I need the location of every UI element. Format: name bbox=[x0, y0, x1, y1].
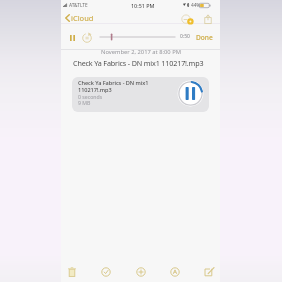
staticText: November 2, 2017 at 8:00 PM bbox=[101, 48, 181, 56]
button[interactable]: Check Ya Fabrics - DN mix1 bbox=[72, 77, 209, 112]
staticText: Check Ya Fabrics - DN mix1 110217!.mp3 bbox=[73, 58, 204, 68]
staticText: Check Ya Fabrics - DN mix1 bbox=[78, 79, 149, 87]
staticText: 10:51 PM bbox=[131, 2, 155, 9]
button[interactable]: Pause audio bbox=[177, 80, 204, 107]
staticText: 110217!.mp3 bbox=[78, 86, 112, 94]
staticText: 44% bbox=[191, 2, 201, 9]
button[interactable]: Done bbox=[196, 33, 213, 42]
button[interactable]: Delete bbox=[64, 264, 80, 280]
button[interactable]: Rewind 15 seconds bbox=[80, 31, 94, 44]
button[interactable]: Reply bbox=[181, 13, 196, 26]
button[interactable]: Move bbox=[133, 264, 149, 280]
button[interactable]: iCloud bbox=[65, 11, 94, 24]
button[interactable]: Pause bbox=[65, 31, 79, 44]
button[interactable]: Share bbox=[202, 12, 214, 25]
button[interactable]: Mark as read bbox=[98, 264, 114, 280]
button[interactable]: Reply bbox=[167, 264, 183, 280]
staticText: iCloud bbox=[71, 13, 94, 23]
staticText: AT&T bbox=[69, 2, 80, 9]
staticText: LTE bbox=[80, 2, 88, 9]
staticText: 9 MB bbox=[78, 99, 91, 106]
staticText: 0 seconds bbox=[78, 93, 103, 100]
button[interactable]: Compose bbox=[201, 264, 217, 280]
staticText: 0:50 bbox=[180, 33, 190, 40]
